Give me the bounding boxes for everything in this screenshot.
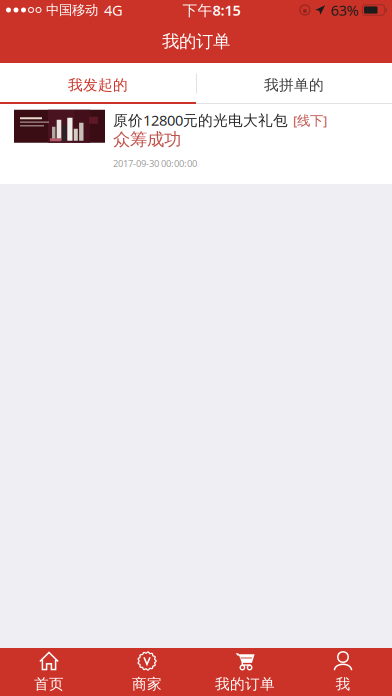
staticText: 众筹成功 (113, 129, 181, 150)
staticText: 原价12800元的光电大礼包 (113, 110, 288, 130)
button[interactable]: 原价12800元的光电大礼包 (0, 104, 392, 184)
button[interactable]: 商家 (98, 648, 196, 696)
staticText: 2017-09-30 00:00:00 (113, 157, 197, 170)
button[interactable]: 我的订单 (196, 648, 294, 696)
staticText: 首页 (34, 675, 64, 693)
staticText: 下午8:15 (182, 0, 240, 20)
staticText: [线下] (293, 111, 327, 129)
staticText: 商家 (132, 675, 162, 693)
staticText: 4G (104, 0, 123, 20)
button[interactable]: 我 (294, 648, 392, 696)
staticText: 我发起的 (68, 76, 128, 94)
staticText: 63% (330, 0, 358, 20)
button[interactable]: 我发起的 (0, 63, 196, 104)
button[interactable]: 我拼单的 (196, 63, 392, 104)
staticText: 中国移动 (46, 2, 98, 18)
button[interactable]: 首页 (0, 648, 98, 696)
staticText: 我 (335, 675, 350, 693)
staticText: 我的订单 (162, 31, 230, 52)
staticText: 我的订单 (215, 675, 275, 693)
staticText: 我拼单的 (264, 76, 324, 94)
